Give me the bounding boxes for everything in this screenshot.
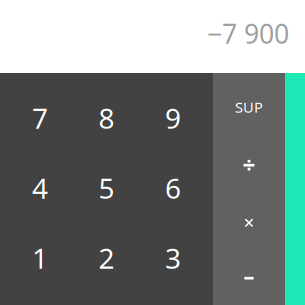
button[interactable]: 4: [7, 153, 73, 223]
staticText: 6: [165, 169, 181, 207]
button[interactable]: 7: [7, 83, 73, 153]
staticText: 2: [98, 239, 114, 277]
button[interactable]: 9: [140, 83, 206, 153]
staticText: 9: [165, 99, 181, 137]
button[interactable]: 1: [7, 223, 73, 293]
staticText: SUP: [235, 97, 263, 117]
button[interactable]: 8: [73, 83, 140, 153]
staticText: 8: [98, 99, 114, 137]
button[interactable]: 5: [73, 153, 140, 223]
button[interactable]: 3: [140, 223, 206, 293]
staticText: 4: [32, 169, 48, 207]
staticText: 3: [165, 239, 181, 277]
button[interactable]: 6: [140, 153, 206, 223]
staticText: −7 900: [207, 16, 289, 51]
button[interactable]: Minus: [213, 249, 285, 305]
button[interactable]: Multiply: [213, 192, 285, 249]
button[interactable]: 2: [73, 223, 140, 293]
staticText: 7: [32, 99, 48, 137]
staticText: 5: [98, 169, 114, 207]
button[interactable]: Divide: [213, 135, 285, 192]
staticText: 1: [32, 239, 48, 277]
button[interactable]: Superscript: [213, 78, 285, 135]
